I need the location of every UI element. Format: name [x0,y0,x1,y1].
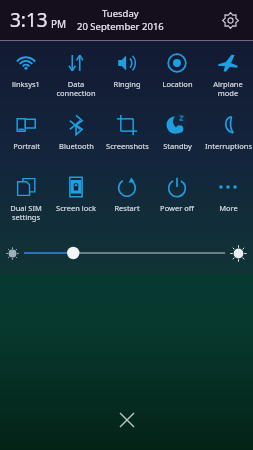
staticText: PM [51,17,67,31]
staticText: Ringing [113,79,141,89]
staticText: Standby [163,141,192,151]
staticText: Airplane mode [213,79,243,99]
button[interactable]: Ringing [102,47,152,89]
staticText: 3:13 [10,7,48,33]
staticText: Portrait [13,141,40,151]
button[interactable]: Portrait [1,109,51,151]
button[interactable]: Screenshots [102,109,152,151]
button[interactable]: Data connection [51,47,101,99]
staticText: Location [162,79,193,89]
staticText: Interruptions [205,141,252,151]
button[interactable]: Interruptions [203,109,253,151]
staticText: Power off [160,203,194,213]
staticText: Tuesday [102,7,139,20]
staticText: Screen lock [56,203,96,213]
button[interactable]: linksys1 [1,47,51,89]
staticText: Screenshots [106,141,149,151]
button[interactable]: More [203,171,253,213]
button[interactable]: Settings [213,3,247,37]
staticText: Dual SIM settings [10,203,42,223]
button[interactable]: Power off [152,171,202,213]
staticText: linksys1 [12,79,40,89]
button[interactable]: Brightness [6,240,247,266]
button[interactable]: Bluetooth [51,109,101,151]
button[interactable]: Standby [152,109,202,151]
staticText: Bluetooth [59,141,94,151]
button[interactable]: Airplane mode [203,47,253,99]
button[interactable]: Screen lock [51,171,101,213]
button[interactable]: Dual SIM settings [1,171,51,223]
button[interactable]: Close [105,398,149,442]
staticText: More [219,203,238,213]
button[interactable]: Location [152,47,202,89]
staticText: Data connection [56,79,96,99]
staticText: Restart [114,203,140,213]
button[interactable]: Restart [102,171,152,213]
staticText: 20 September 2016 [77,20,164,33]
